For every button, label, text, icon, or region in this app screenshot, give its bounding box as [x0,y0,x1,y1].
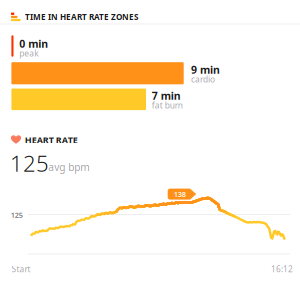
staticText: peak [19,47,38,59]
staticText: 7 min [152,88,181,103]
staticText: cardio [191,73,215,85]
staticText: 16:12 [271,263,293,275]
staticText: TIME IN HEART RATE ZONES [25,11,138,22]
staticText: 138 [174,189,186,199]
staticText: HEART RATE [25,134,78,146]
staticText: 125 [10,148,49,178]
staticText: fat burn [152,99,183,111]
staticText: 125 [11,210,23,220]
staticText: Start [11,263,30,275]
staticText: 0 min [19,36,48,51]
staticText: 9 min [191,62,220,77]
staticText: avg bpm [48,160,89,174]
